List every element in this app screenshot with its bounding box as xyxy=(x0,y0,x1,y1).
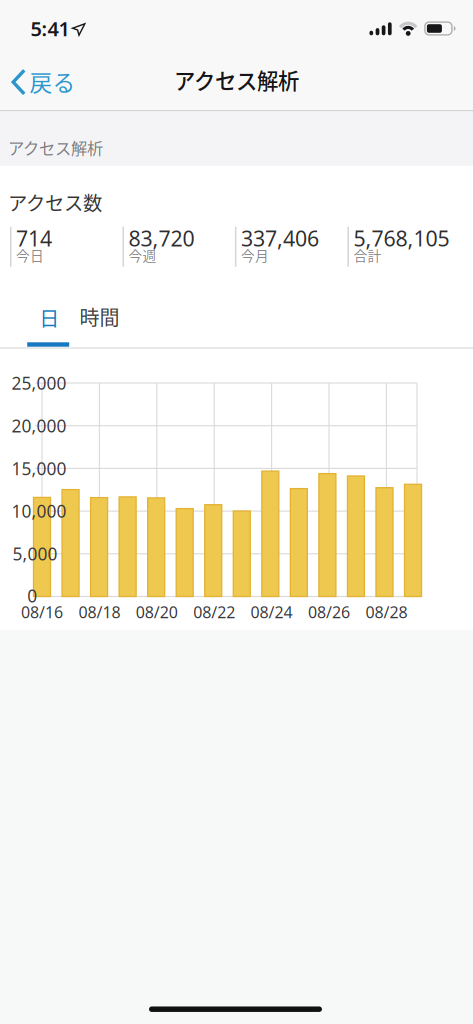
staticText: 08/26 xyxy=(308,601,350,623)
staticText: 今週 xyxy=(128,245,156,265)
staticText: 5,000 xyxy=(12,542,57,565)
staticText: 08/22 xyxy=(193,601,235,623)
staticText: 合計 xyxy=(353,245,381,265)
staticText: 08/24 xyxy=(251,601,293,623)
staticText: 08/16 xyxy=(21,601,63,623)
staticText: アクセス解析 xyxy=(174,64,299,95)
staticText: 20,000 xyxy=(11,414,66,437)
button[interactable]: 日 xyxy=(27,302,69,348)
staticText: アクセス解析 xyxy=(8,136,103,159)
staticText: 08/18 xyxy=(78,601,120,623)
button[interactable]: 時間 xyxy=(71,302,127,348)
staticText: 今月 xyxy=(241,245,269,265)
button[interactable]: 戻る xyxy=(8,66,76,99)
staticText: 10,000 xyxy=(11,500,66,523)
staticText: 25,000 xyxy=(11,371,66,394)
staticText: 15,000 xyxy=(11,457,66,480)
staticText: 0 xyxy=(27,584,37,607)
staticText: 5,768,105 xyxy=(353,224,449,252)
staticText: 83,720 xyxy=(128,224,194,252)
staticText: 5:41 xyxy=(30,15,69,42)
staticText: 714 xyxy=(16,224,52,252)
staticText: 08/20 xyxy=(136,601,178,623)
staticText: 時間 xyxy=(80,302,120,331)
staticText: 日 xyxy=(39,303,59,332)
staticText: 337,406 xyxy=(241,224,319,252)
staticText: 08/28 xyxy=(365,601,407,623)
staticText: 今日 xyxy=(16,245,44,265)
staticText: 戻る xyxy=(29,65,75,98)
staticText: アクセス数 xyxy=(8,188,102,216)
